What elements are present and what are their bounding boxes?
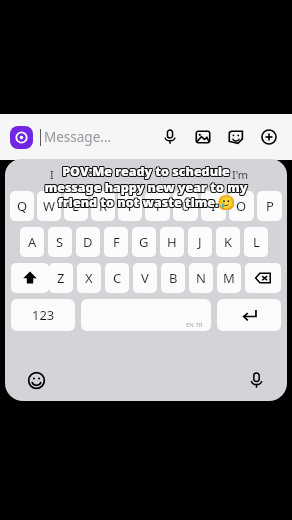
staticText: I'm: [232, 167, 249, 182]
staticText: V: [141, 269, 149, 287]
button[interactable]: M: [217, 263, 241, 293]
button[interactable]: Gallery: [192, 126, 214, 148]
button[interactable]: U: [173, 191, 198, 221]
button[interactable]: H: [160, 227, 184, 257]
staticText: T: [126, 197, 134, 215]
staticText: U: [181, 197, 191, 215]
button[interactable]: O: [229, 191, 254, 221]
staticText: POV:Me ready to schedule message happy n…: [25, 164, 265, 212]
staticText: R: [99, 197, 108, 215]
button[interactable]: I'm: [193, 159, 287, 189]
staticText: M: [223, 269, 235, 287]
button[interactable]: Camera: [10, 126, 33, 149]
staticText: G: [139, 233, 149, 251]
button[interactable]: Shift: [11, 263, 49, 293]
button[interactable]: V: [133, 263, 157, 293]
button[interactable]: A: [20, 227, 44, 257]
staticText: J: [198, 233, 202, 251]
staticText: 123: [32, 306, 55, 324]
staticText: POV:Me ready to schedule message happy n…: [25, 163, 265, 211]
staticText: D: [83, 233, 93, 251]
button[interactable]: D: [76, 227, 100, 257]
button[interactable]: G: [132, 227, 156, 257]
button[interactable]: 123: [11, 299, 75, 331]
staticText: S: [56, 233, 64, 251]
button[interactable]: X: [77, 263, 101, 293]
button[interactable]: More options: [258, 126, 280, 148]
button[interactable]: S: [48, 227, 72, 257]
button[interactable]: N: [189, 263, 213, 293]
button[interactable]: Q: [10, 191, 34, 221]
button[interactable]: W: [37, 191, 61, 221]
staticText: P: [266, 197, 274, 215]
button[interactable]: Voice message: [159, 126, 181, 148]
button[interactable]: I: [201, 191, 226, 221]
button[interactable]: C: [105, 263, 129, 293]
staticText: Message...: [44, 128, 112, 146]
button[interactable]: Stickers: [225, 126, 247, 148]
staticText: H: [167, 233, 177, 251]
staticText: I: [50, 167, 54, 182]
button[interactable]: [99, 159, 193, 189]
button[interactable]: B: [161, 263, 185, 293]
staticText: POV:Me ready to schedule message happy n…: [27, 162, 267, 210]
staticText: POV:Me ready to schedule message happy n…: [26, 164, 266, 212]
button[interactable]: EN TR: [81, 299, 211, 331]
button[interactable]: L: [244, 227, 268, 257]
staticText: C: [113, 269, 122, 287]
button[interactable]: Backspace: [245, 263, 281, 293]
button[interactable]: P: [257, 191, 282, 221]
staticText: W: [43, 197, 56, 215]
button[interactable]: E: [64, 191, 88, 221]
button[interactable]: R: [91, 191, 115, 221]
staticText: E: [72, 197, 80, 215]
button[interactable]: Voice input: [243, 367, 269, 393]
staticText: F: [113, 233, 120, 251]
staticText: POV:Me ready to schedule message happy n…: [26, 163, 266, 211]
staticText: O: [236, 197, 247, 215]
staticText: POV:Me ready to schedule message happy n…: [27, 164, 267, 212]
button[interactable]: Enter: [217, 299, 281, 331]
staticText: POV:Me ready to schedule message happy n…: [26, 162, 266, 210]
staticText: N: [196, 269, 206, 287]
staticText: Z: [57, 269, 65, 287]
staticText: POV:Me ready to schedule message happy n…: [27, 163, 267, 211]
staticText: I: [211, 197, 216, 215]
staticText: B: [169, 269, 178, 287]
staticText: EN TR: [186, 321, 203, 329]
staticText: X: [85, 269, 93, 287]
staticText: K: [224, 233, 233, 251]
button[interactable]: I: [5, 159, 99, 189]
staticText: Y: [154, 197, 162, 215]
button[interactable]: F: [104, 227, 128, 257]
button[interactable]: K: [216, 227, 240, 257]
button[interactable]: J: [188, 227, 212, 257]
staticText: A: [28, 233, 37, 251]
button[interactable]: T: [118, 191, 142, 221]
staticText: POV:Me ready to schedule message happy n…: [25, 162, 265, 210]
button[interactable]: Z: [49, 263, 73, 293]
button[interactable]: Y: [145, 191, 170, 221]
button[interactable]: Emoji: [23, 367, 49, 393]
staticText: Q: [17, 197, 28, 215]
staticText: L: [253, 233, 260, 251]
